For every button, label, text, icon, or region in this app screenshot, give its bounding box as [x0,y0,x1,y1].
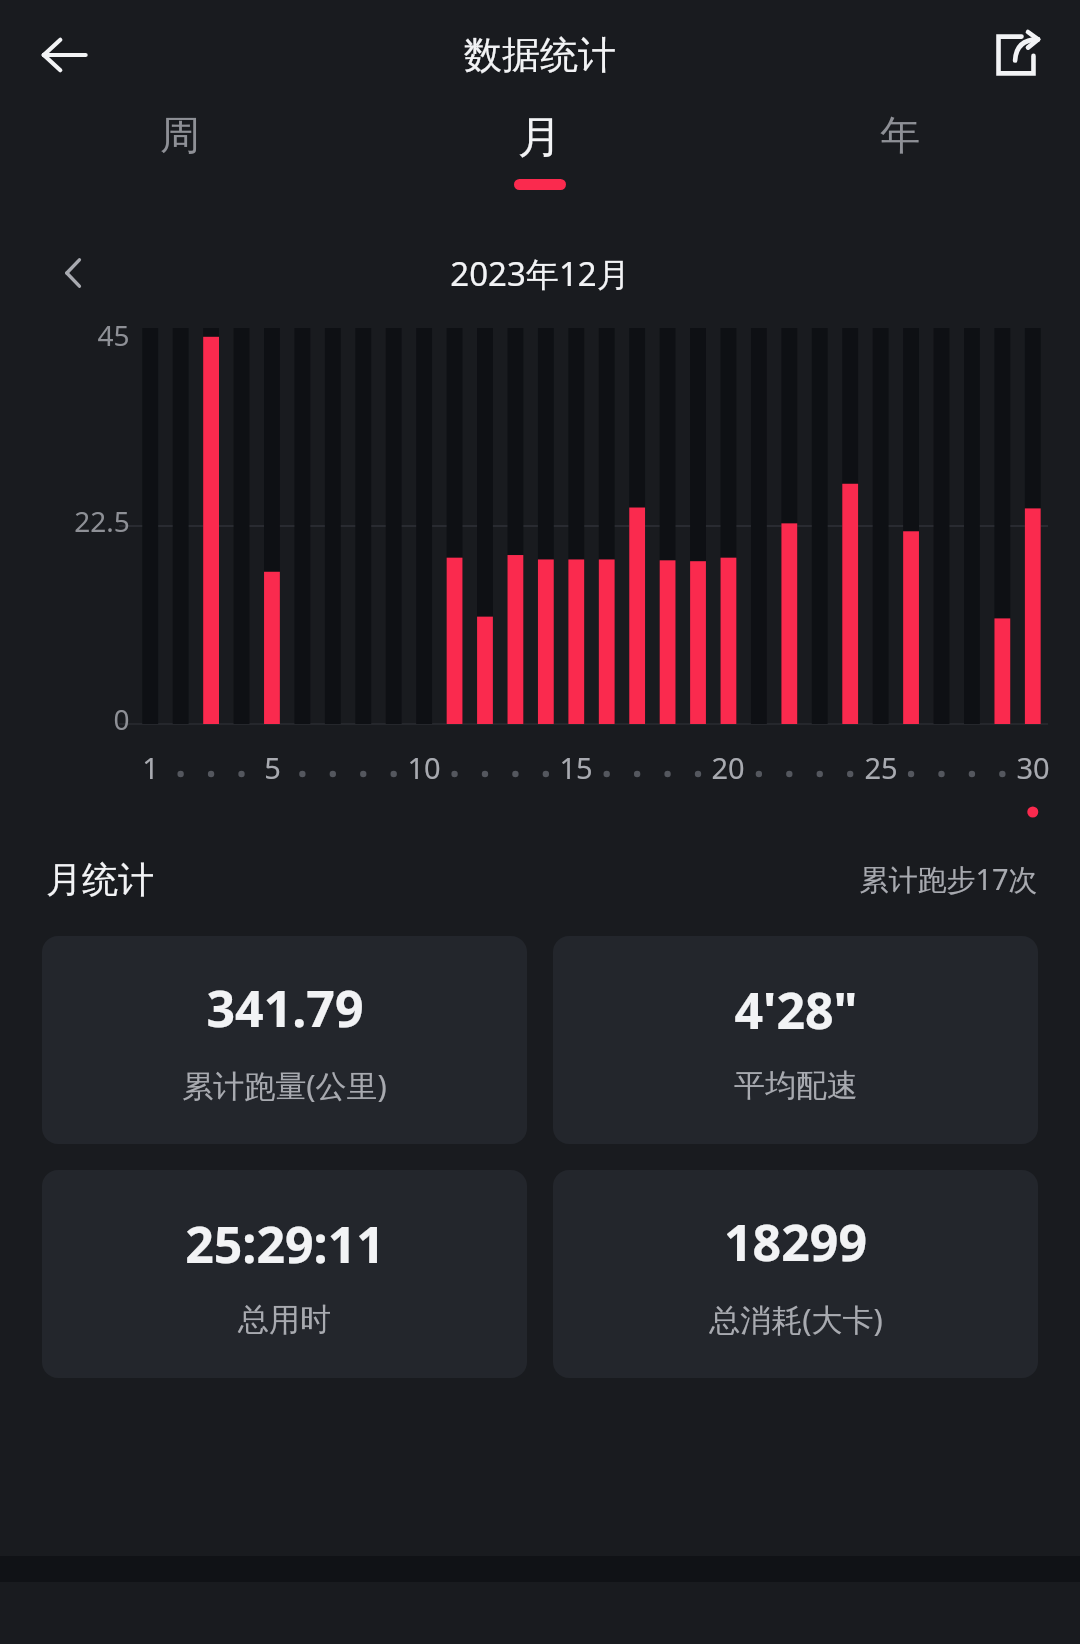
staticText: 平均配速 [734,1066,858,1105]
button[interactable]: 年 [720,110,1080,185]
staticText: 18299 [724,1208,867,1276]
staticText: 4'28" [734,976,858,1044]
staticText: 15 [559,748,593,787]
button[interactable]: Back [28,19,100,91]
button[interactable]: Previous month [42,241,106,305]
staticText: 月统计 [46,857,154,902]
staticText: 30 [1016,748,1050,787]
staticText: 22.5 [74,502,130,540]
button[interactable]: Share [980,19,1052,91]
staticText: 月 [518,110,562,165]
staticText: 10 [407,748,441,787]
staticText: 0 [113,700,130,738]
staticText: 45 [97,316,130,354]
button[interactable]: 25:29:11 [42,1170,527,1378]
button[interactable]: 18299 [553,1170,1038,1378]
staticText: 年 [880,110,920,160]
staticText: 周 [160,110,200,160]
staticText: 25:29:11 [185,1210,385,1278]
staticText: 总消耗(大卡) [709,1298,883,1340]
staticText: 累计跑步17次 [859,859,1038,899]
staticText: 1 [142,748,159,787]
button[interactable]: 周 [0,110,360,185]
staticText: 数据统计 [464,31,616,79]
staticText: 2023年12月 [450,251,630,296]
staticText: 5 [264,748,281,787]
staticText: 341.79 [206,974,364,1042]
button[interactable]: 月 [360,110,720,190]
button[interactable]: 4'28" [553,936,1038,1144]
staticText: 20 [711,748,745,787]
staticText: 25 [864,748,898,787]
button[interactable]: 341.79 [42,936,527,1144]
staticText: 总用时 [238,1300,331,1339]
staticText: 累计跑量(公里) [182,1064,387,1106]
